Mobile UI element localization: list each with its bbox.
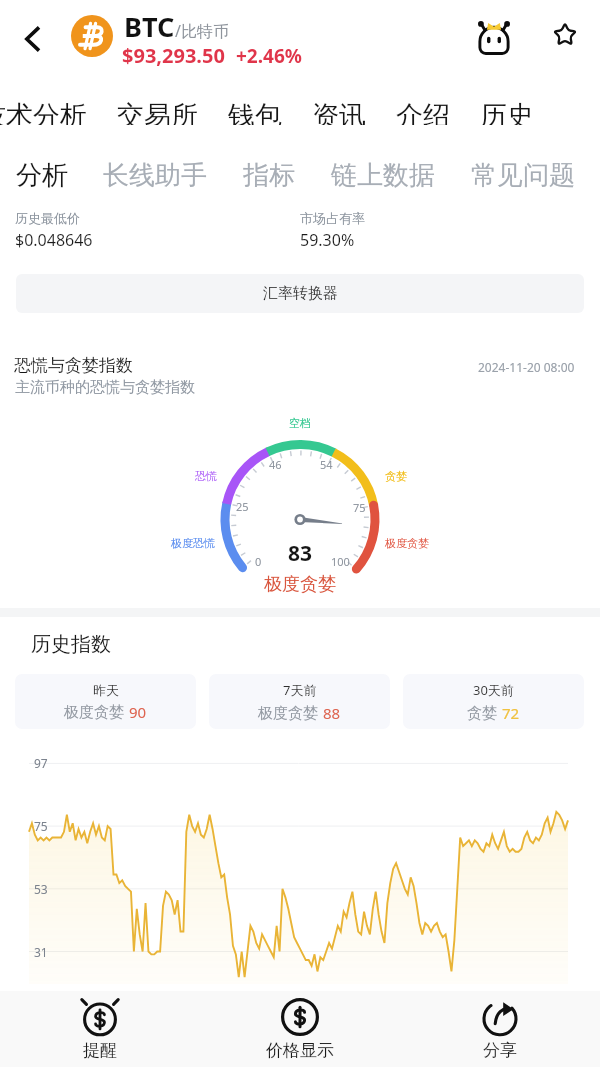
staticText: +2.46% xyxy=(236,43,302,69)
staticText: 53 xyxy=(34,881,48,897)
button[interactable]: 资讯 xyxy=(297,96,381,128)
staticText: 54 xyxy=(320,457,333,472)
button[interactable]: 分享 xyxy=(400,991,600,1067)
staticText: 提醒 xyxy=(83,1040,117,1061)
staticText: 极度贪婪 xyxy=(258,704,318,723)
staticText: BTC xyxy=(124,8,175,45)
staticText: 市场占有率 xyxy=(300,210,365,226)
button[interactable]: 交易所 xyxy=(102,96,213,128)
button[interactable]: 介绍 xyxy=(381,96,465,128)
staticText: 97 xyxy=(34,755,48,771)
button[interactable]: 链上数据 xyxy=(313,157,453,194)
staticText: 恐慌与贪婪指数 xyxy=(14,355,133,376)
button[interactable]: Assistant xyxy=(469,12,518,61)
staticText: 75 xyxy=(353,500,366,515)
staticText: 83 xyxy=(288,539,313,568)
staticText: 历史数据 xyxy=(480,99,549,125)
staticText: 59.30% xyxy=(300,229,355,251)
staticText: 昨天 xyxy=(93,682,119,698)
staticText: 价格显示 xyxy=(266,1040,334,1061)
staticText: 历史最低价 xyxy=(15,210,80,226)
staticText: 资讯 xyxy=(312,99,366,125)
button[interactable]: Back xyxy=(7,14,57,64)
staticText: 极度贪婪 xyxy=(64,703,124,722)
staticText: $0.048646 xyxy=(15,229,93,251)
staticText: 贪婪 xyxy=(385,469,407,483)
staticText: 恐慌 xyxy=(195,469,217,483)
staticText: 贪婪 xyxy=(467,704,497,723)
button[interactable]: 分析 xyxy=(0,157,86,199)
staticText: $93,293.50 xyxy=(122,42,225,69)
staticText: 交易所 xyxy=(117,99,198,125)
staticText: /比特币 xyxy=(175,20,229,42)
staticText: 技术分析 xyxy=(0,99,87,125)
staticText: 25 xyxy=(236,499,249,514)
button[interactable]: 钱包 xyxy=(213,96,297,128)
button[interactable]: 历史数据 xyxy=(465,96,564,128)
button[interactable]: Favorite xyxy=(541,11,589,59)
button[interactable]: 汇率转换器 xyxy=(16,274,584,313)
staticText: 72 xyxy=(502,703,520,723)
button[interactable]: 提醒 xyxy=(0,991,200,1067)
staticText: 汇率转换器 xyxy=(263,284,338,303)
staticText: 88 xyxy=(323,703,341,723)
button[interactable]: 昨天 xyxy=(15,674,196,729)
button[interactable]: 常见问题 xyxy=(453,157,593,194)
button[interactable]: 技术分析 xyxy=(0,96,102,128)
staticText: 链上数据 xyxy=(331,159,435,192)
staticText: 30天前 xyxy=(473,681,514,699)
button[interactable]: 长线助手 xyxy=(85,157,225,194)
staticText: 90 xyxy=(129,702,147,722)
staticText: 31 xyxy=(34,944,48,960)
staticText: 钱包 xyxy=(228,99,282,125)
staticText: 长线助手 xyxy=(103,159,207,192)
staticText: 指标 xyxy=(243,159,295,192)
staticText: 主流币种的恐慌与贪婪指数 xyxy=(15,378,195,397)
staticText: 空档 xyxy=(289,416,311,430)
staticText: 极度贪婪 xyxy=(264,573,336,596)
staticText: 75 xyxy=(34,818,48,834)
staticText: 极度贪婪 xyxy=(385,536,429,550)
staticText: 2024-11-20 08:00 xyxy=(478,359,575,375)
staticText: 分析 xyxy=(16,159,68,192)
button[interactable]: 价格显示 xyxy=(200,991,400,1067)
staticText: 100 xyxy=(331,554,350,569)
staticText: 分享 xyxy=(483,1040,517,1061)
button[interactable]: 指标 xyxy=(225,157,313,194)
button[interactable]: 7天前 xyxy=(209,674,390,729)
button[interactable]: 30天前 xyxy=(403,674,584,729)
staticText: 介绍 xyxy=(396,99,450,125)
staticText: 0 xyxy=(255,554,262,569)
staticText: 极度恐慌 xyxy=(171,536,215,550)
staticText: 常见问题 xyxy=(471,159,575,192)
staticText: 7天前 xyxy=(283,681,317,699)
staticText: 46 xyxy=(269,457,282,472)
staticText: 历史指数 xyxy=(31,632,111,657)
